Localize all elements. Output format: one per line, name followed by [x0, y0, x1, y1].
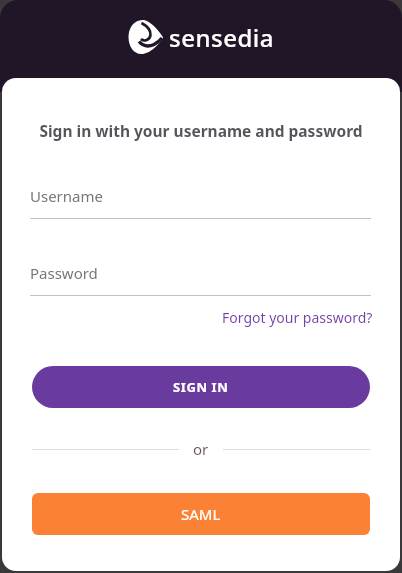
button[interactable]: SAML — [32, 493, 370, 535]
staticText: Password — [30, 263, 98, 283]
button[interactable]: Forgot your password? — [222, 308, 373, 327]
staticText: Sign in with your username and password — [39, 120, 363, 141]
staticText: SIGN IN — [173, 378, 229, 396]
staticText: SAML — [181, 504, 221, 524]
staticText: or — [193, 439, 209, 459]
button[interactable]: SIGN IN — [32, 366, 370, 408]
staticText: Username — [30, 186, 103, 206]
staticText: sensedia — [169, 21, 275, 54]
staticText: Forgot your password? — [222, 308, 373, 327]
button[interactable] — [30, 178, 371, 219]
button[interactable] — [30, 255, 371, 296]
